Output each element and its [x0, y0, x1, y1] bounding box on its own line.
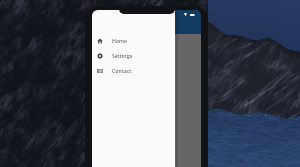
other: Status icons — [184, 13, 195, 16]
staticText: Contact — [112, 67, 132, 74]
staticText: Home — [112, 37, 127, 44]
button[interactable]: Contact — [92, 63, 175, 78]
button[interactable]: Home — [92, 33, 175, 48]
staticText: Settings — [112, 52, 133, 59]
button[interactable]: Settings — [92, 48, 175, 63]
